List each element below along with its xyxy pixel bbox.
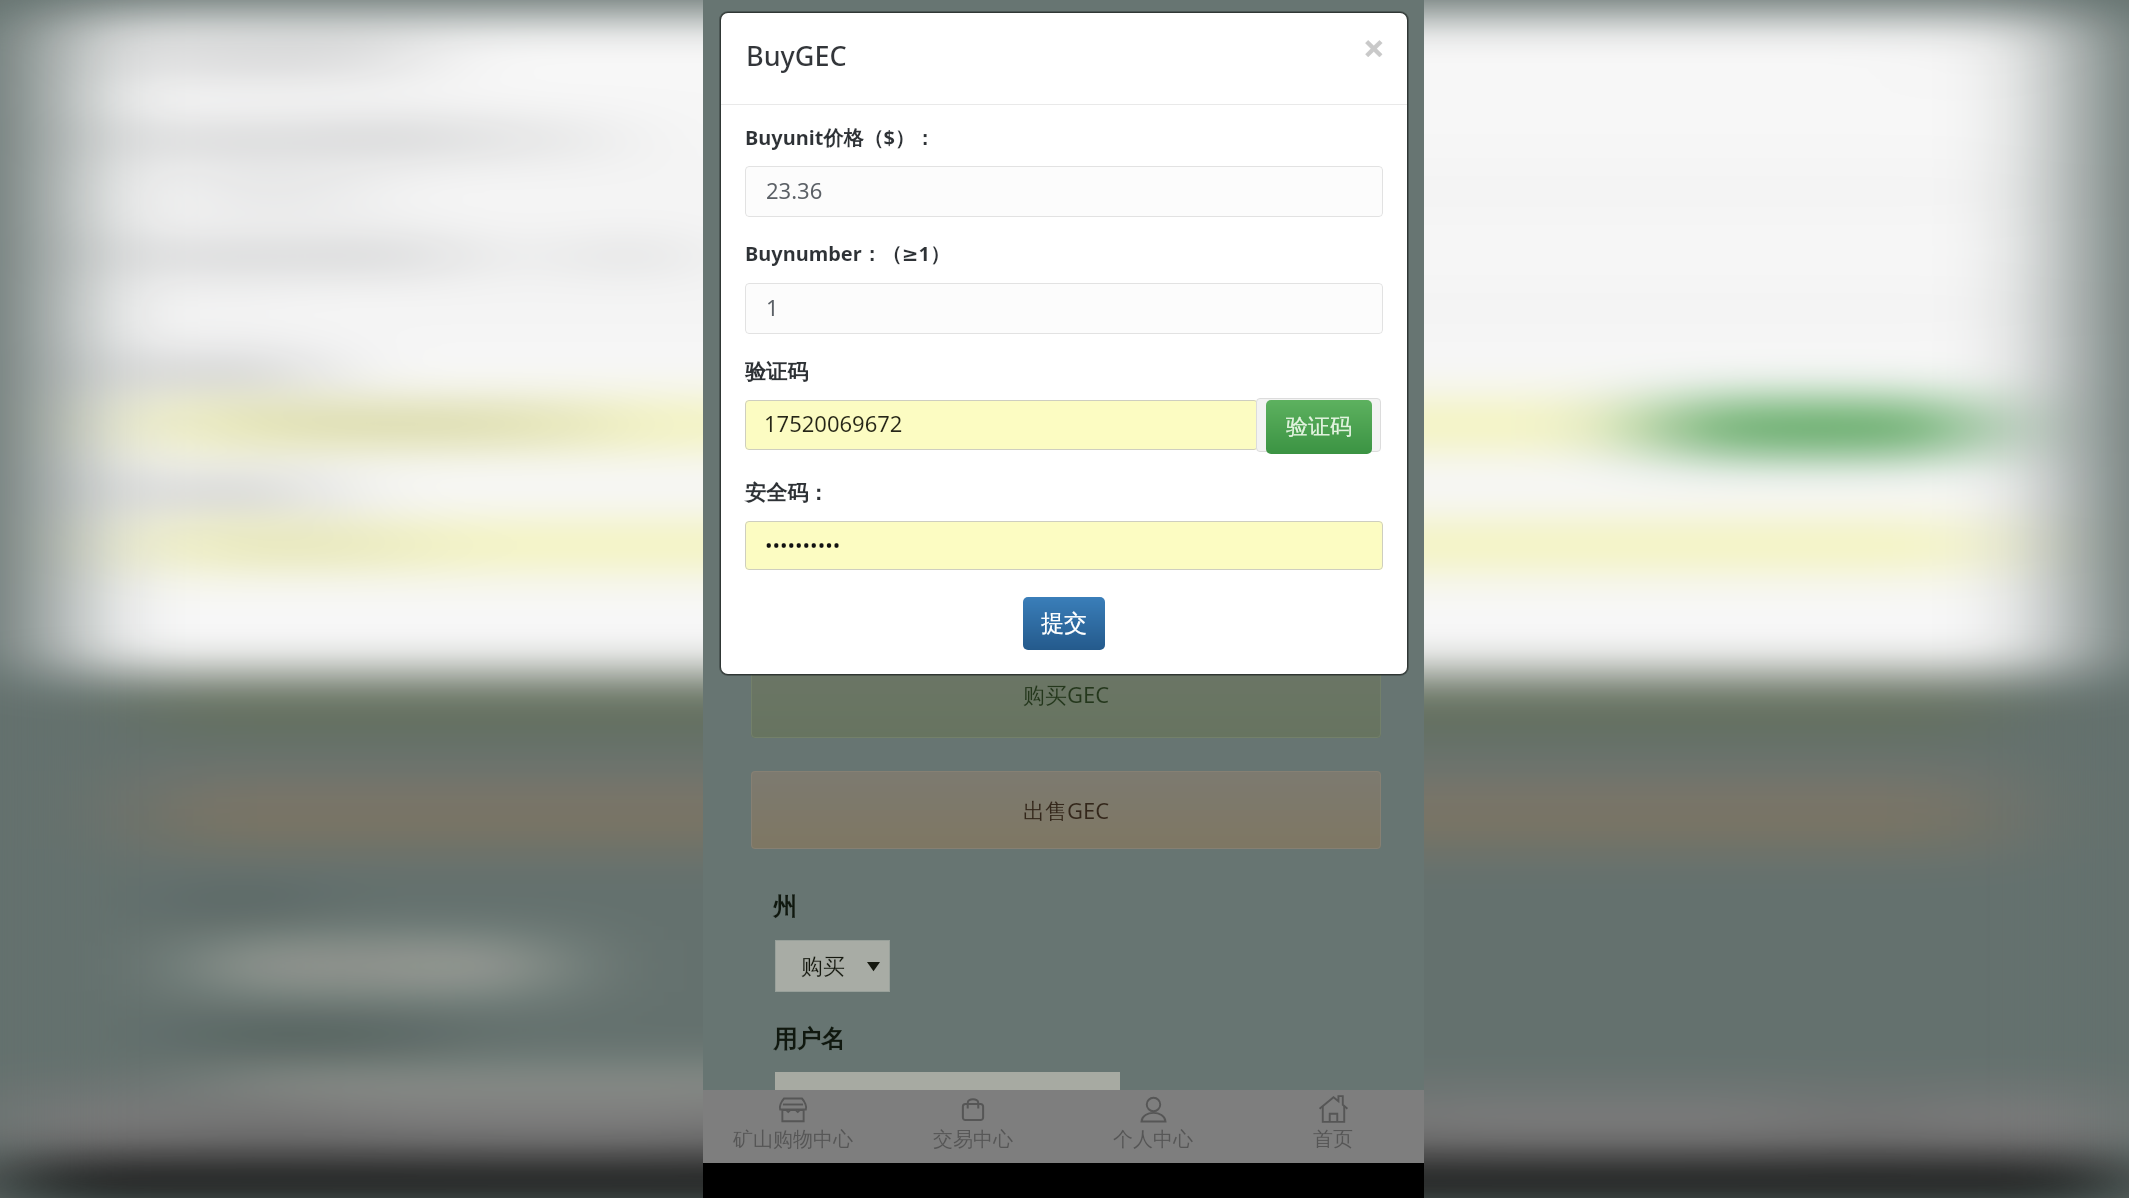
staticText: ×: [1363, 21, 1385, 69]
button[interactable]: 矿山购物中心: [0, 1090, 531, 1163]
button[interactable]: 验证码: [1266, 400, 1372, 454]
staticText: 交易中心: [933, 1127, 1013, 1152]
staticText: 验证码: [124, 359, 310, 385]
button[interactable]: 出售GEC: [751, 771, 1381, 849]
button[interactable]: 矿山购物中心: [703, 1090, 883, 1163]
staticText: 验证码: [1721, 413, 1916, 441]
button[interactable]: 首页: [1243, 1090, 1423, 1163]
staticText: ••••••••••: [765, 532, 841, 559]
staticText: 矿山购物中心: [89, 1127, 443, 1152]
staticText: 交易中心: [679, 1127, 915, 1152]
button[interactable]: 购买GEC: [142, 649, 2002, 738]
button[interactable]: ••••••••••: [745, 521, 1383, 570]
button[interactable]: 购买: [213, 940, 552, 992]
button[interactable]: 1: [745, 283, 1383, 334]
staticText: 验证码: [1286, 413, 1352, 441]
staticText: 购买GEC: [1023, 679, 1110, 709]
button[interactable]: 个人中心: [1063, 1090, 1594, 1163]
staticText: 安全码：: [745, 480, 829, 506]
button[interactable]: Close: [1350, 21, 1398, 69]
staticText: 个人中心: [1211, 1127, 1447, 1152]
staticText: BuyGEC: [127, 37, 425, 74]
staticText: 23.36: [766, 175, 823, 205]
button[interactable]: 首页: [1594, 1090, 2126, 1163]
button[interactable]: 23.36: [124, 166, 2008, 217]
button[interactable]: ••••••••••: [124, 521, 2008, 570]
staticText: Buynumber：（≥1）: [124, 240, 729, 267]
button[interactable]: 出售GEC: [142, 771, 2002, 849]
staticText: 提交: [1041, 609, 1087, 638]
staticText: Buynumber：（≥1）: [745, 240, 950, 267]
button[interactable]: 验证码: [1662, 400, 1975, 454]
button[interactable]: 购买: [775, 940, 890, 992]
staticText: 购买: [801, 953, 845, 981]
staticText: 州: [773, 892, 797, 922]
button[interactable]: 交易中心: [883, 1090, 1063, 1163]
button[interactable]: 购买GEC: [751, 649, 1381, 738]
button[interactable]: Close: [1910, 21, 2052, 69]
staticText: 提交: [998, 609, 1134, 638]
staticText: 出售GEC: [1023, 795, 1110, 825]
staticText: 用户名: [773, 1024, 845, 1054]
staticText: 验证码: [745, 359, 808, 385]
staticText: 购买GEC: [945, 679, 1202, 709]
button[interactable]: 提交: [945, 597, 1187, 650]
button[interactable]: 交易中心: [531, 1090, 1063, 1163]
staticText: ×: [1949, 21, 2014, 69]
staticText: 17520069672: [180, 408, 590, 438]
staticText: BuyGEC: [746, 37, 847, 74]
button[interactable]: 23.36: [745, 166, 1383, 217]
staticText: Buyunit价格（$）：: [745, 124, 935, 151]
staticText: 矿山购物中心: [733, 1127, 853, 1152]
staticText: 安全码：: [124, 480, 372, 506]
staticText: 出售GEC: [945, 795, 1202, 825]
button[interactable]: 个人中心: [1063, 1090, 1243, 1163]
staticText: Buyunit价格（$）：: [124, 124, 685, 151]
staticText: 个人中心: [1113, 1127, 1193, 1152]
button[interactable]: 1: [124, 283, 2008, 334]
staticText: 首页: [1801, 1127, 1919, 1152]
staticText: 1: [766, 292, 779, 322]
button[interactable]: 17520069672: [745, 400, 1258, 450]
button[interactable]: 17520069672: [124, 400, 1639, 450]
button[interactable]: 提交: [1023, 597, 1105, 650]
staticText: 首页: [1313, 1127, 1353, 1152]
staticText: 17520069672: [764, 408, 903, 438]
